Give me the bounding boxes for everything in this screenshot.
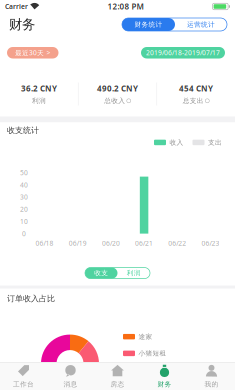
staticText: 财务 [9, 16, 35, 33]
staticText: > [46, 48, 50, 57]
staticText: 0 [22, 229, 26, 238]
staticText: 12:08 PM [108, 1, 144, 12]
staticText: 消息 [63, 380, 77, 388]
staticText: 小猪短租 [138, 349, 166, 357]
staticText: 财务 [157, 380, 171, 388]
staticText: 06/21 [135, 239, 153, 248]
staticText: 收入 [169, 138, 183, 146]
staticText: 总收入 [104, 97, 125, 105]
staticText: 收支统计 [7, 125, 39, 135]
staticText: Carrier [5, 2, 28, 11]
button[interactable]: 财务统计 [122, 18, 175, 31]
staticText: 40 [20, 180, 28, 189]
staticText: 50 [20, 168, 28, 177]
staticText: 10 [20, 217, 28, 226]
staticText: 454 CNY [179, 83, 213, 94]
staticText: 支出 [208, 138, 222, 146]
button[interactable]: 房态 [94, 359, 141, 390]
staticText: 利润 [127, 269, 141, 277]
button[interactable]: 2019/06/18-2019/07/17 [141, 47, 225, 58]
staticText: 2019/06/18-2019/07/17 [146, 48, 220, 57]
staticText: 订单收入占比 [7, 294, 55, 303]
staticText: 运营统计 [187, 20, 215, 29]
staticText: 财务统计 [134, 20, 162, 29]
button[interactable]: 工作台 [0, 359, 47, 390]
staticText: 工作台 [13, 380, 34, 388]
staticText: 06/22 [168, 239, 186, 248]
button[interactable]: 运营统计 [175, 18, 227, 31]
button[interactable]: 财务 [141, 359, 188, 390]
staticText: 06/18 [36, 239, 54, 248]
staticText: 途家 [138, 333, 152, 341]
button[interactable]: 利润 [117, 268, 150, 279]
staticText: 我的 [204, 380, 218, 388]
staticText: 36.2 CNY [21, 83, 57, 94]
staticText: 最近30天 [15, 48, 44, 57]
button[interactable]: 最近30天 [7, 47, 58, 58]
staticText: 总支出 [183, 97, 204, 105]
staticText: 利润 [32, 97, 46, 105]
staticText: 490.2 CNY [97, 83, 138, 94]
staticText: 收支 [94, 269, 108, 277]
button[interactable]: 消息 [47, 359, 94, 390]
button[interactable]: 我的 [188, 359, 235, 390]
staticText: 房态 [110, 380, 124, 388]
staticText: 06/19 [69, 239, 87, 248]
staticText: 20 [20, 205, 28, 214]
staticText: 06/23 [201, 239, 219, 248]
staticText: 30 [20, 193, 28, 201]
staticText: 06/20 [102, 239, 120, 248]
button[interactable]: 收支 [85, 268, 117, 279]
